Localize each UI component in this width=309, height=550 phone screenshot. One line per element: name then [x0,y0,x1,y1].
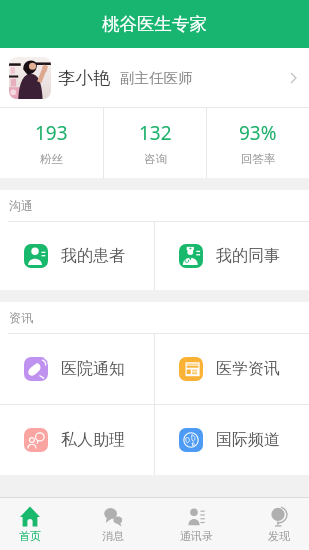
staticText: 医学资讯 [216,359,280,379]
staticText: 发现 [268,529,290,543]
button[interactable]: 发现 [255,498,303,550]
staticText: 资讯 [9,310,33,325]
button[interactable]: 李小艳 [0,48,309,107]
button[interactable]: 193 [0,108,103,178]
button[interactable]: 我的同事 [155,222,309,290]
staticText: 消息 [102,529,124,543]
button[interactable]: 132 [104,108,206,178]
staticText: 通讯录 [180,529,213,543]
staticText: 国际频道 [216,430,280,450]
staticText: 回答率 [241,152,276,166]
staticText: 私人助理 [61,430,125,450]
staticText: 首页 [19,529,41,543]
button[interactable]: 通讯录 [172,498,220,550]
other: 首页 [20,506,40,527]
button[interactable]: 我的患者 [0,222,154,290]
button[interactable]: 医学资讯 [155,334,309,404]
staticText: 我的患者 [61,246,125,266]
staticText: 桃谷医生专家 [102,13,207,35]
staticText: 我的同事 [216,246,280,266]
other: 消息 [103,506,123,527]
button[interactable]: 首页 [6,498,54,550]
button[interactable]: 93% [207,108,309,178]
staticText: 193 [35,120,68,146]
staticText: 李小艳 [58,67,111,89]
button[interactable]: 医院通知 [0,334,154,404]
staticText: 咨询 [144,152,167,166]
button[interactable]: 国际频道 [155,405,309,475]
staticText: 沟通 [9,198,33,213]
staticText: 93% [239,120,277,146]
staticText: 粉丝 [40,152,63,166]
other: 通讯录 [186,506,206,527]
staticText: 医院通知 [61,359,125,379]
staticText: 副主任医师 [120,69,193,87]
button[interactable]: 私人助理 [0,405,154,475]
other: 发现 [269,506,289,527]
button[interactable]: 消息 [89,498,137,550]
staticText: 132 [139,120,172,146]
